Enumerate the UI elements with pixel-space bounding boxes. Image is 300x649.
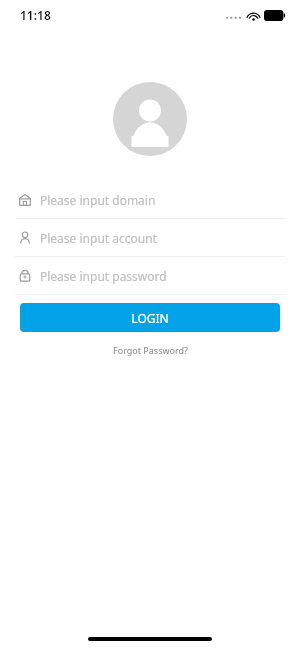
button[interactable]: Password <box>0 257 300 294</box>
staticText: 11:18 <box>20 7 51 23</box>
button[interactable]: LOGIN <box>20 303 280 332</box>
staticText: Forgot Password? <box>113 344 188 356</box>
staticText: Please input password <box>40 268 167 284</box>
staticText: Please input account <box>40 230 157 246</box>
staticText: LOGIN <box>131 310 169 326</box>
other: Password <box>18 269 32 283</box>
button[interactable]: Forgot Password? <box>105 342 196 358</box>
button[interactable]: Domain <box>0 181 300 218</box>
other: Account <box>18 231 32 245</box>
staticText: Please input domain <box>40 192 156 208</box>
other: Domain <box>18 193 32 207</box>
button[interactable]: Account <box>0 219 300 256</box>
